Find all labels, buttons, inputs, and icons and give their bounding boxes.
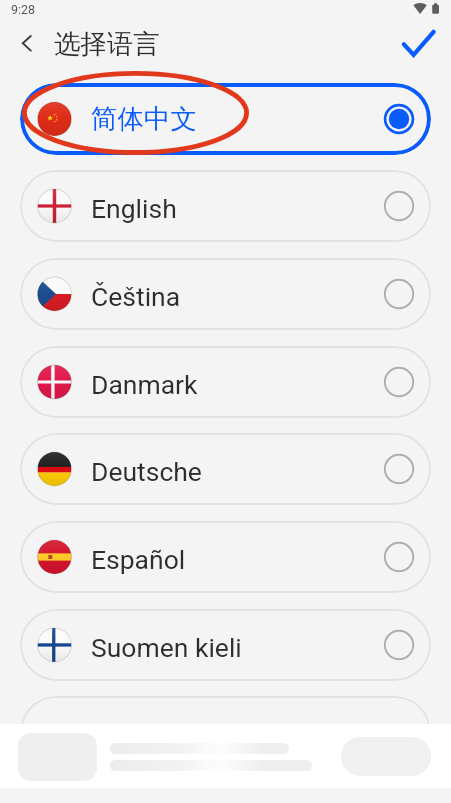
button[interactable]: Danmark [20,346,431,418]
button[interactable]: Čeština [20,258,431,330]
button[interactable]: Back [10,28,43,61]
staticText: Español [91,544,186,575]
staticText: Deutsche [91,456,202,487]
button[interactable]: Deutsche [20,433,431,505]
button[interactable] [20,696,431,768]
staticText: Čeština [91,281,181,312]
button[interactable]: Suomen kieli [20,609,431,681]
button[interactable]: 简体中文 [20,83,431,155]
staticText: 选择语言 [54,27,160,60]
staticText: Suomen kieli [91,632,242,663]
staticText: 9:28 [11,2,36,17]
button[interactable]: Español [20,521,431,593]
staticText: 简体中文 [91,102,197,135]
staticText: Danmark [91,369,198,400]
staticText: English [91,193,177,224]
button[interactable]: Confirm [396,22,440,66]
button[interactable]: English [20,170,431,242]
